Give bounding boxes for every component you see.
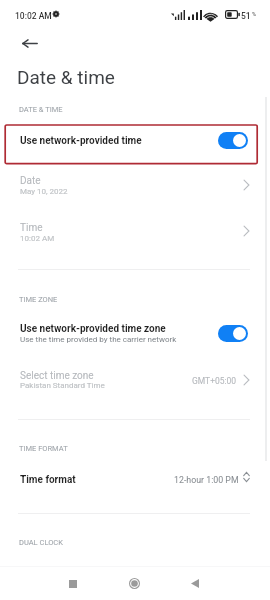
button[interactable]: Home <box>120 569 148 597</box>
button[interactable]: Back <box>181 569 209 597</box>
staticText: May 10, 2022 <box>20 187 68 196</box>
button[interactable]: Select time zone <box>0 363 270 399</box>
staticText: Time format <box>20 474 76 486</box>
staticText: Time <box>20 222 43 234</box>
staticText: TIME ZONE <box>19 295 58 304</box>
staticText: % <box>252 11 257 17</box>
staticText: Pakistan Standard Time <box>20 381 105 390</box>
staticText: 10:02 AM <box>20 234 55 243</box>
staticText: Date & time <box>17 66 115 88</box>
button[interactable]: Recent apps <box>59 569 87 597</box>
staticText: Select time zone <box>20 370 94 382</box>
staticText: 10:02 AM <box>15 11 52 21</box>
button[interactable]: Use network-provided time zone <box>0 316 270 350</box>
button[interactable]: Toggle <box>218 132 248 149</box>
staticText: 51 <box>241 11 251 21</box>
staticText: GMT+05:00 <box>192 376 237 386</box>
button[interactable]: Time format <box>0 466 270 496</box>
staticText: DUAL CLOCK <box>19 538 63 547</box>
staticText: 12-hour 1:00 PM <box>174 475 239 485</box>
button[interactable]: Time <box>0 214 270 251</box>
staticText: Date <box>20 175 41 187</box>
button[interactable]: Use network-provided time <box>0 124 270 165</box>
staticText: TIME FORMAT <box>19 444 68 453</box>
button[interactable]: Date <box>0 168 270 205</box>
button[interactable]: Toggle <box>218 325 248 342</box>
staticText: Use the time provided by the carrier net… <box>20 335 177 344</box>
staticText: Use network-provided time <box>20 135 142 147</box>
button[interactable]: Back <box>14 27 46 59</box>
staticText: Use network-provided time zone <box>20 323 166 335</box>
staticText: DATE & TIME <box>19 105 63 114</box>
